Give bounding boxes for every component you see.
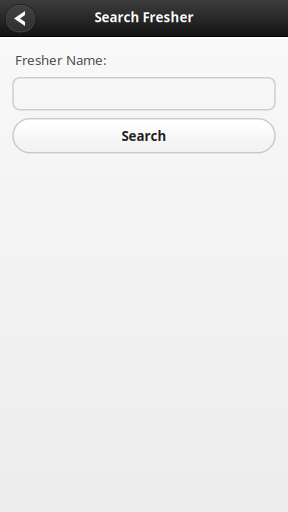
staticText: Fresher Name: <box>15 51 107 69</box>
staticText: Search Fresher <box>94 8 193 26</box>
button[interactable]: Back <box>3 0 38 36</box>
staticText: Search <box>121 127 166 145</box>
button[interactable]: Search <box>0 119 288 153</box>
button[interactable]: Fresher Name <box>0 78 288 110</box>
